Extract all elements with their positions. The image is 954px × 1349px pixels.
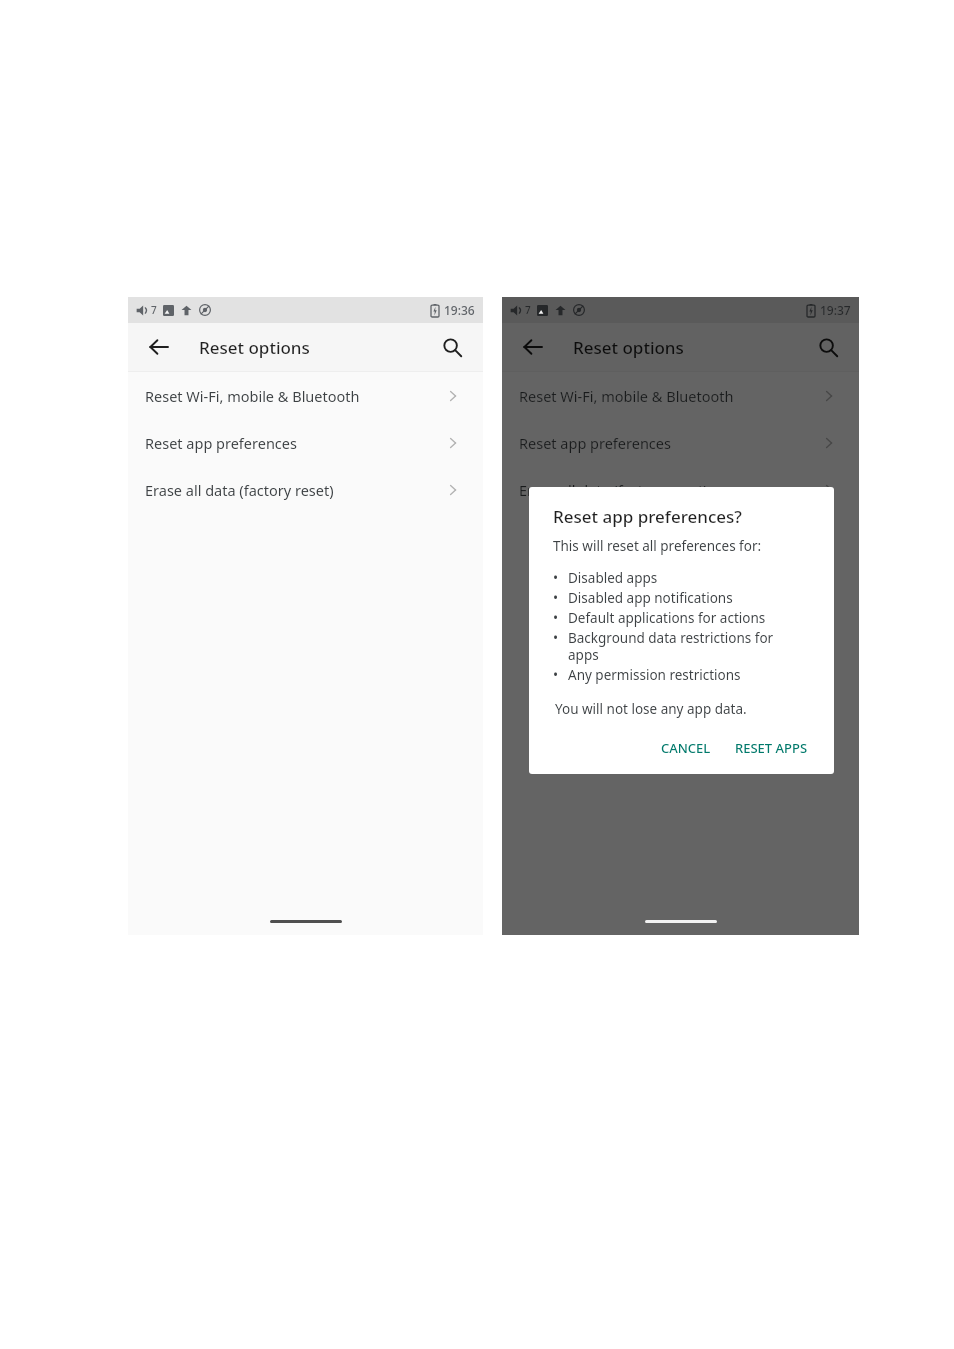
staticText: Default applications for actions: [568, 609, 766, 627]
staticText: Disabled app notifications: [568, 589, 733, 607]
staticText: Background data restrictions for apps: [568, 629, 774, 664]
staticText: Disabled apps: [568, 569, 658, 587]
staticText: 19:37: [820, 302, 851, 318]
staticText: Any permission restrictions: [568, 666, 741, 684]
button[interactable]: Reset app preferences: [128, 419, 483, 466]
staticText: •: [553, 609, 568, 627]
staticText: Erase all data (factory reset): [145, 480, 334, 500]
staticText: Reset Wi-Fi, mobile & Bluetooth: [519, 386, 734, 406]
staticText: Reset app preferences: [145, 433, 297, 453]
staticText: •: [553, 666, 568, 684]
staticText: Reset Wi-Fi, mobile & Bluetooth: [145, 386, 360, 406]
button[interactable]: Erase all data (factory reset): [128, 466, 483, 513]
staticText: •: [553, 589, 568, 607]
button[interactable]: Erase all data (factory reset): [502, 466, 859, 513]
button[interactable]: RESET APPS: [727, 730, 816, 766]
staticText: •: [553, 629, 568, 647]
button[interactable]: Search: [811, 330, 845, 364]
staticText: Reset app preferences: [519, 433, 671, 453]
staticText: 19:36: [444, 302, 475, 318]
button[interactable]: Search: [435, 330, 469, 364]
staticText: Reset app preferences?: [553, 505, 742, 528]
button[interactable]: Reset Wi-Fi, mobile & Bluetooth: [502, 372, 859, 419]
staticText: Reset options: [573, 336, 684, 359]
staticText: RESET APPS: [735, 739, 808, 757]
button[interactable]: Back: [516, 330, 550, 364]
staticText: Erase all data (factory reset): [519, 480, 708, 500]
staticText: 7: [525, 303, 531, 317]
staticText: CANCEL: [661, 739, 711, 757]
staticText: You will not lose any app data.: [555, 700, 747, 718]
button[interactable]: Reset Wi-Fi, mobile & Bluetooth: [128, 372, 483, 419]
staticText: 7: [151, 303, 157, 317]
staticText: Reset options: [199, 336, 310, 359]
button[interactable]: Back: [142, 330, 176, 364]
button[interactable]: CANCEL: [653, 730, 719, 766]
staticText: •: [553, 569, 568, 587]
button[interactable]: Reset app preferences: [502, 419, 859, 466]
staticText: This will reset all preferences for:: [553, 537, 762, 555]
